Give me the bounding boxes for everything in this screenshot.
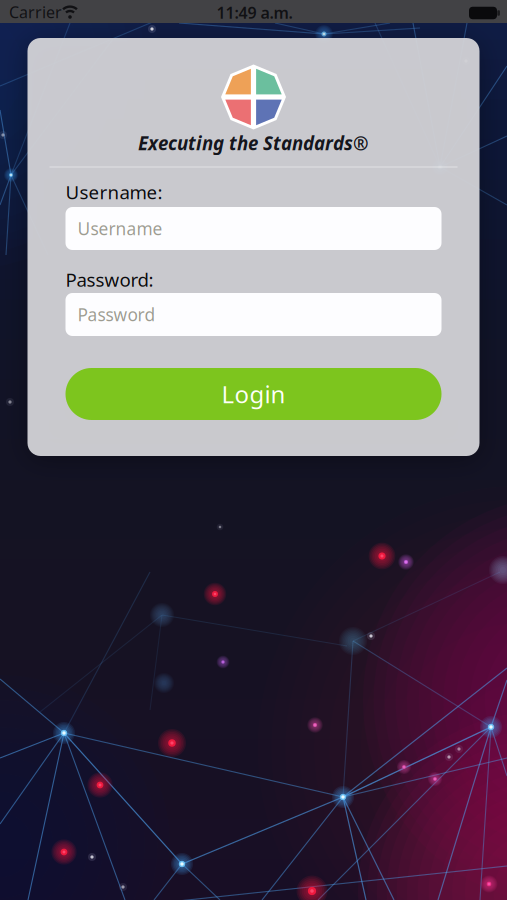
button[interactable]: Login [65,368,441,420]
staticText: Username [77,217,162,240]
staticText: 11:49 a.m. [216,2,292,23]
staticText: Carrier [9,1,62,23]
staticText: Username: [65,180,162,204]
staticText: Password [77,303,155,326]
staticText: Password: [65,267,153,292]
secureTextField[interactable]: Password [77,303,429,326]
staticText: Login [221,378,285,410]
textField[interactable]: Username [77,217,429,240]
staticText: Executing the Standards® [138,131,369,155]
